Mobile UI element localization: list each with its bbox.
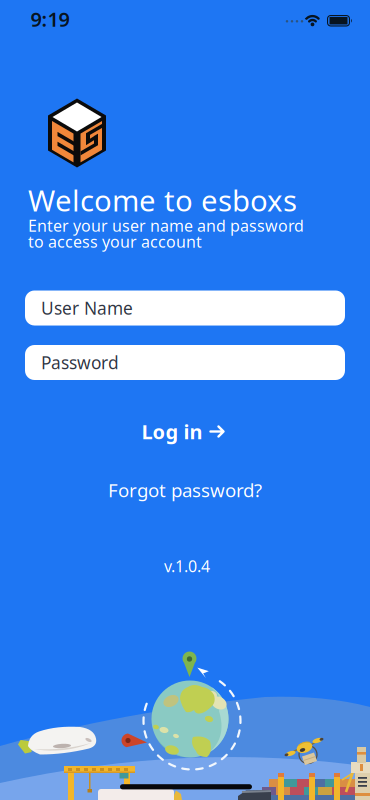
staticText: Forgot password? xyxy=(108,478,262,502)
staticText: 9:19 xyxy=(30,6,69,32)
staticText: Log in xyxy=(141,418,202,445)
staticText: Password xyxy=(41,351,119,374)
staticText: to access your account xyxy=(28,231,202,252)
button[interactable]: Log in xyxy=(127,410,238,453)
staticText: Enter your user name and password xyxy=(28,215,304,236)
staticText: User Name xyxy=(41,296,133,319)
staticText: Welcome to esboxs xyxy=(28,180,297,219)
button[interactable]: Forgot password? xyxy=(100,470,270,510)
button[interactable]: Password xyxy=(25,345,345,380)
staticText: v.1.0.4 xyxy=(164,555,210,577)
button[interactable]: User Name xyxy=(25,290,345,325)
